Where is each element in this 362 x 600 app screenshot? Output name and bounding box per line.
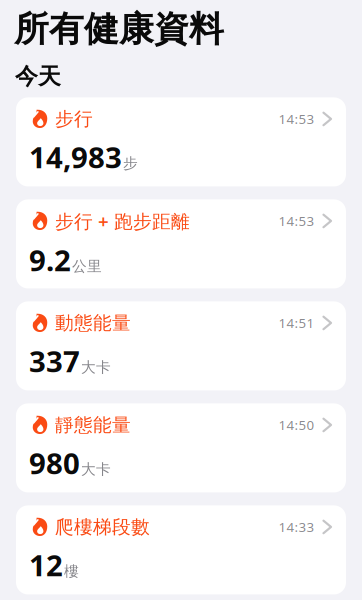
staticText: 337 <box>29 341 80 380</box>
button[interactable]: 動態能量 <box>16 301 346 390</box>
staticText: 靜態能量 <box>55 413 131 436</box>
staticText: 14:50 <box>278 416 314 434</box>
staticText: 步行 <box>55 107 93 130</box>
staticText: 14:33 <box>278 518 314 536</box>
button[interactable]: 步行 <box>16 97 346 186</box>
staticText: 14:53 <box>278 212 314 230</box>
staticText: 爬樓梯段數 <box>55 515 150 538</box>
staticText: 公里 <box>72 257 102 275</box>
staticText: 所有健康資料 <box>14 8 224 51</box>
staticText: 12 <box>29 545 63 584</box>
button[interactable]: 靜態能量 <box>16 403 346 492</box>
staticText: 步 <box>123 154 138 172</box>
staticText: 14,983 <box>29 137 122 176</box>
button[interactable]: 爬樓梯段數 <box>16 505 346 594</box>
button[interactable]: 步行 + 跑步距離 <box>16 199 346 288</box>
staticText: 樓 <box>64 562 79 580</box>
staticText: 9.2 <box>29 240 71 279</box>
staticText: 14:51 <box>278 314 314 332</box>
staticText: 動態能量 <box>55 311 131 334</box>
staticText: 14:53 <box>278 110 314 128</box>
staticText: 步行 + 跑步距離 <box>55 209 190 233</box>
staticText: 980 <box>29 443 80 482</box>
staticText: 今天 <box>15 63 61 90</box>
staticText: 大卡 <box>81 358 111 376</box>
staticText: 大卡 <box>81 460 111 478</box>
